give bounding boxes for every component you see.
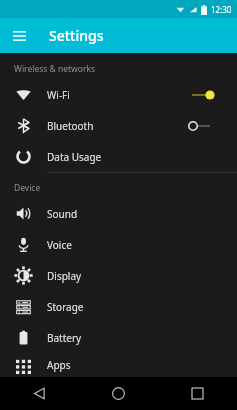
- button[interactable]: Back: [0, 377, 79, 410]
- button[interactable]: Display: [0, 260, 237, 291]
- button[interactable]: Wi-Fi on: [183, 85, 233, 105]
- button[interactable]: Home: [79, 377, 158, 410]
- staticText: Settings: [49, 26, 104, 45]
- staticText: Apps: [47, 358, 237, 372]
- staticText: 12:30: [211, 4, 232, 15]
- button[interactable]: Open navigation drawer: [9, 26, 29, 46]
- staticText: Sound: [47, 207, 237, 221]
- button[interactable]: Storage: [0, 291, 237, 322]
- button[interactable]: Battery: [0, 322, 237, 353]
- staticText: Wireless & networks: [14, 63, 96, 75]
- button[interactable]: Data Usage: [0, 141, 237, 172]
- staticText: Wi-Fi: [47, 88, 183, 102]
- button[interactable]: Recent apps: [158, 377, 237, 410]
- staticText: Display: [47, 269, 237, 283]
- staticText: Data Usage: [47, 150, 237, 164]
- button[interactable]: Bluetooth off: [183, 116, 233, 136]
- staticText: Voice: [47, 238, 237, 252]
- button[interactable]: Sound: [0, 198, 237, 229]
- button[interactable]: Voice: [0, 229, 237, 260]
- staticText: Battery: [47, 331, 237, 345]
- button[interactable]: Wi-Fi: [0, 79, 237, 110]
- button[interactable]: Bluetooth: [0, 110, 237, 141]
- staticText: Device: [14, 182, 41, 194]
- staticText: Bluetooth: [47, 119, 183, 133]
- button[interactable]: Apps: [0, 353, 237, 377]
- staticText: Storage: [47, 300, 237, 314]
